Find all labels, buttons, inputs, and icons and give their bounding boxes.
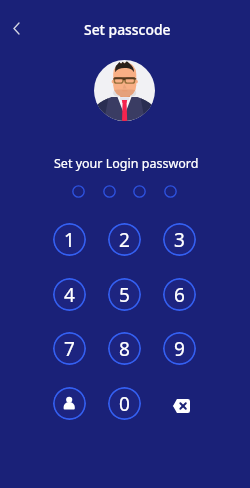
staticText: 5 <box>119 282 130 308</box>
button[interactable]: 5 <box>108 278 141 311</box>
staticText: 3 <box>174 227 185 253</box>
staticText: Set passcode <box>84 20 171 39</box>
button[interactable]: 2 <box>108 223 141 256</box>
button[interactable]: Back <box>1 13 31 43</box>
staticText: Set your Login password <box>54 155 199 172</box>
button[interactable]: 9 <box>163 332 196 365</box>
staticText: 6 <box>174 282 185 308</box>
button[interactable]: 1 <box>53 223 86 256</box>
button[interactable]: 0 <box>108 387 141 420</box>
staticText: 9 <box>174 336 185 362</box>
staticText: 0 <box>119 391 130 417</box>
button[interactable]: 6 <box>163 278 196 311</box>
staticText: 8 <box>119 336 130 362</box>
staticText: 4 <box>64 282 75 308</box>
staticText: 7 <box>64 336 75 362</box>
button[interactable]: Login with account <box>53 387 86 420</box>
staticText: 1 <box>64 227 75 253</box>
button[interactable]: 4 <box>53 278 86 311</box>
button[interactable]: Delete <box>164 389 198 423</box>
button[interactable]: 7 <box>53 332 86 365</box>
button[interactable]: 3 <box>163 223 196 256</box>
button[interactable]: 8 <box>108 332 141 365</box>
staticText: 2 <box>119 227 130 253</box>
